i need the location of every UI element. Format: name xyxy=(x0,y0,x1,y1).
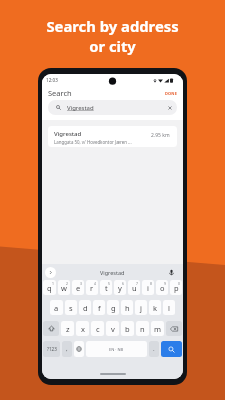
staticText: 8 xyxy=(150,281,152,286)
staticText: Vigrestad xyxy=(67,104,94,112)
button[interactable]: h xyxy=(121,300,133,315)
button[interactable]: l xyxy=(163,300,175,315)
button[interactable]: r xyxy=(86,280,98,295)
staticText: v xyxy=(111,324,115,334)
staticText: q xyxy=(47,283,52,293)
button[interactable]: ?123 xyxy=(43,341,60,357)
staticText: EN · NB xyxy=(109,347,124,352)
staticText: 7 xyxy=(136,281,138,286)
button[interactable]: Voice input xyxy=(168,269,175,276)
button[interactable]: k xyxy=(149,300,161,315)
button[interactable]: , xyxy=(62,341,72,357)
staticText: 0 xyxy=(178,281,180,286)
staticText: u xyxy=(132,283,137,293)
staticText: x xyxy=(81,324,85,334)
staticText: 4 xyxy=(94,281,96,286)
staticText: d xyxy=(83,303,88,313)
staticText: Search by address xyxy=(46,16,179,36)
button[interactable]: x xyxy=(76,321,89,336)
button[interactable]: b xyxy=(121,321,134,336)
button[interactable]: p xyxy=(170,280,182,295)
button[interactable]: Vigrestad xyxy=(48,100,177,115)
staticText: m xyxy=(154,324,162,334)
button[interactable]: e xyxy=(72,280,84,295)
staticText: 1 xyxy=(52,281,54,286)
button[interactable]: s xyxy=(65,300,77,315)
button[interactable]: EN · NB xyxy=(86,341,147,357)
staticText: j xyxy=(140,303,142,313)
staticText: k xyxy=(153,303,158,313)
staticText: 3 xyxy=(80,281,82,286)
staticText: Search xyxy=(48,88,72,98)
staticText: Vigrestad xyxy=(100,269,125,276)
staticText: i xyxy=(147,283,149,293)
button[interactable]: d xyxy=(79,300,91,315)
staticText: z xyxy=(66,324,70,334)
button[interactable]: v xyxy=(106,321,119,336)
staticText: 2 xyxy=(66,281,68,286)
button[interactable]: DONE xyxy=(165,91,183,96)
button[interactable]: a xyxy=(50,300,63,315)
button[interactable]: q xyxy=(43,280,56,295)
button[interactable]: . xyxy=(149,341,159,357)
staticText: 9 xyxy=(164,281,166,286)
staticText: p xyxy=(174,283,179,293)
button[interactable]: Shift xyxy=(43,321,59,336)
staticText: Langgata 50, v/ Hovedkontor Jæren ... xyxy=(54,139,132,145)
staticText: w xyxy=(61,283,67,293)
staticText: o xyxy=(160,283,165,293)
button[interactable]: w xyxy=(58,280,70,295)
button[interactable]: j xyxy=(135,300,147,315)
staticText: h xyxy=(125,303,130,313)
staticText: l xyxy=(168,303,170,313)
button[interactable]: Backspace xyxy=(166,321,182,336)
staticText: , xyxy=(66,345,68,353)
staticText: g xyxy=(111,303,116,313)
staticText: n xyxy=(140,324,145,334)
button[interactable]: c xyxy=(91,321,104,336)
staticText: 5 xyxy=(108,281,110,286)
staticText: s xyxy=(69,303,73,313)
staticText: 2.95 km xyxy=(151,132,170,139)
staticText: e xyxy=(76,283,81,293)
button[interactable]: m xyxy=(151,321,164,336)
staticText: 6 xyxy=(122,281,124,286)
button[interactable]: More suggestions xyxy=(45,267,56,278)
staticText: DONE xyxy=(165,91,178,96)
staticText: r xyxy=(90,283,94,293)
button[interactable]: Clear search xyxy=(167,105,173,111)
staticText: y xyxy=(118,283,122,293)
staticText: . xyxy=(153,345,155,353)
staticText: b xyxy=(125,324,130,334)
button[interactable]: t xyxy=(100,280,112,295)
staticText: t xyxy=(105,283,108,293)
button[interactable]: Vigrestad xyxy=(48,126,177,147)
staticText: 12:03 xyxy=(46,77,58,83)
staticText: a xyxy=(54,303,59,313)
button[interactable]: Change keyboard language xyxy=(74,341,84,357)
staticText: c xyxy=(96,324,100,334)
button[interactable]: u xyxy=(128,280,140,295)
staticText: ?123 xyxy=(47,346,57,352)
button[interactable]: y xyxy=(114,280,126,295)
button[interactable]: i xyxy=(142,280,154,295)
staticText: or city xyxy=(89,36,136,56)
button[interactable]: f xyxy=(93,300,105,315)
button[interactable]: z xyxy=(61,321,74,336)
button[interactable]: g xyxy=(107,300,119,315)
staticText: Vigrestad xyxy=(54,130,82,138)
button[interactable]: o xyxy=(156,280,168,295)
button[interactable]: n xyxy=(136,321,149,336)
staticText: f xyxy=(98,303,101,313)
button[interactable]: Search xyxy=(161,341,182,357)
